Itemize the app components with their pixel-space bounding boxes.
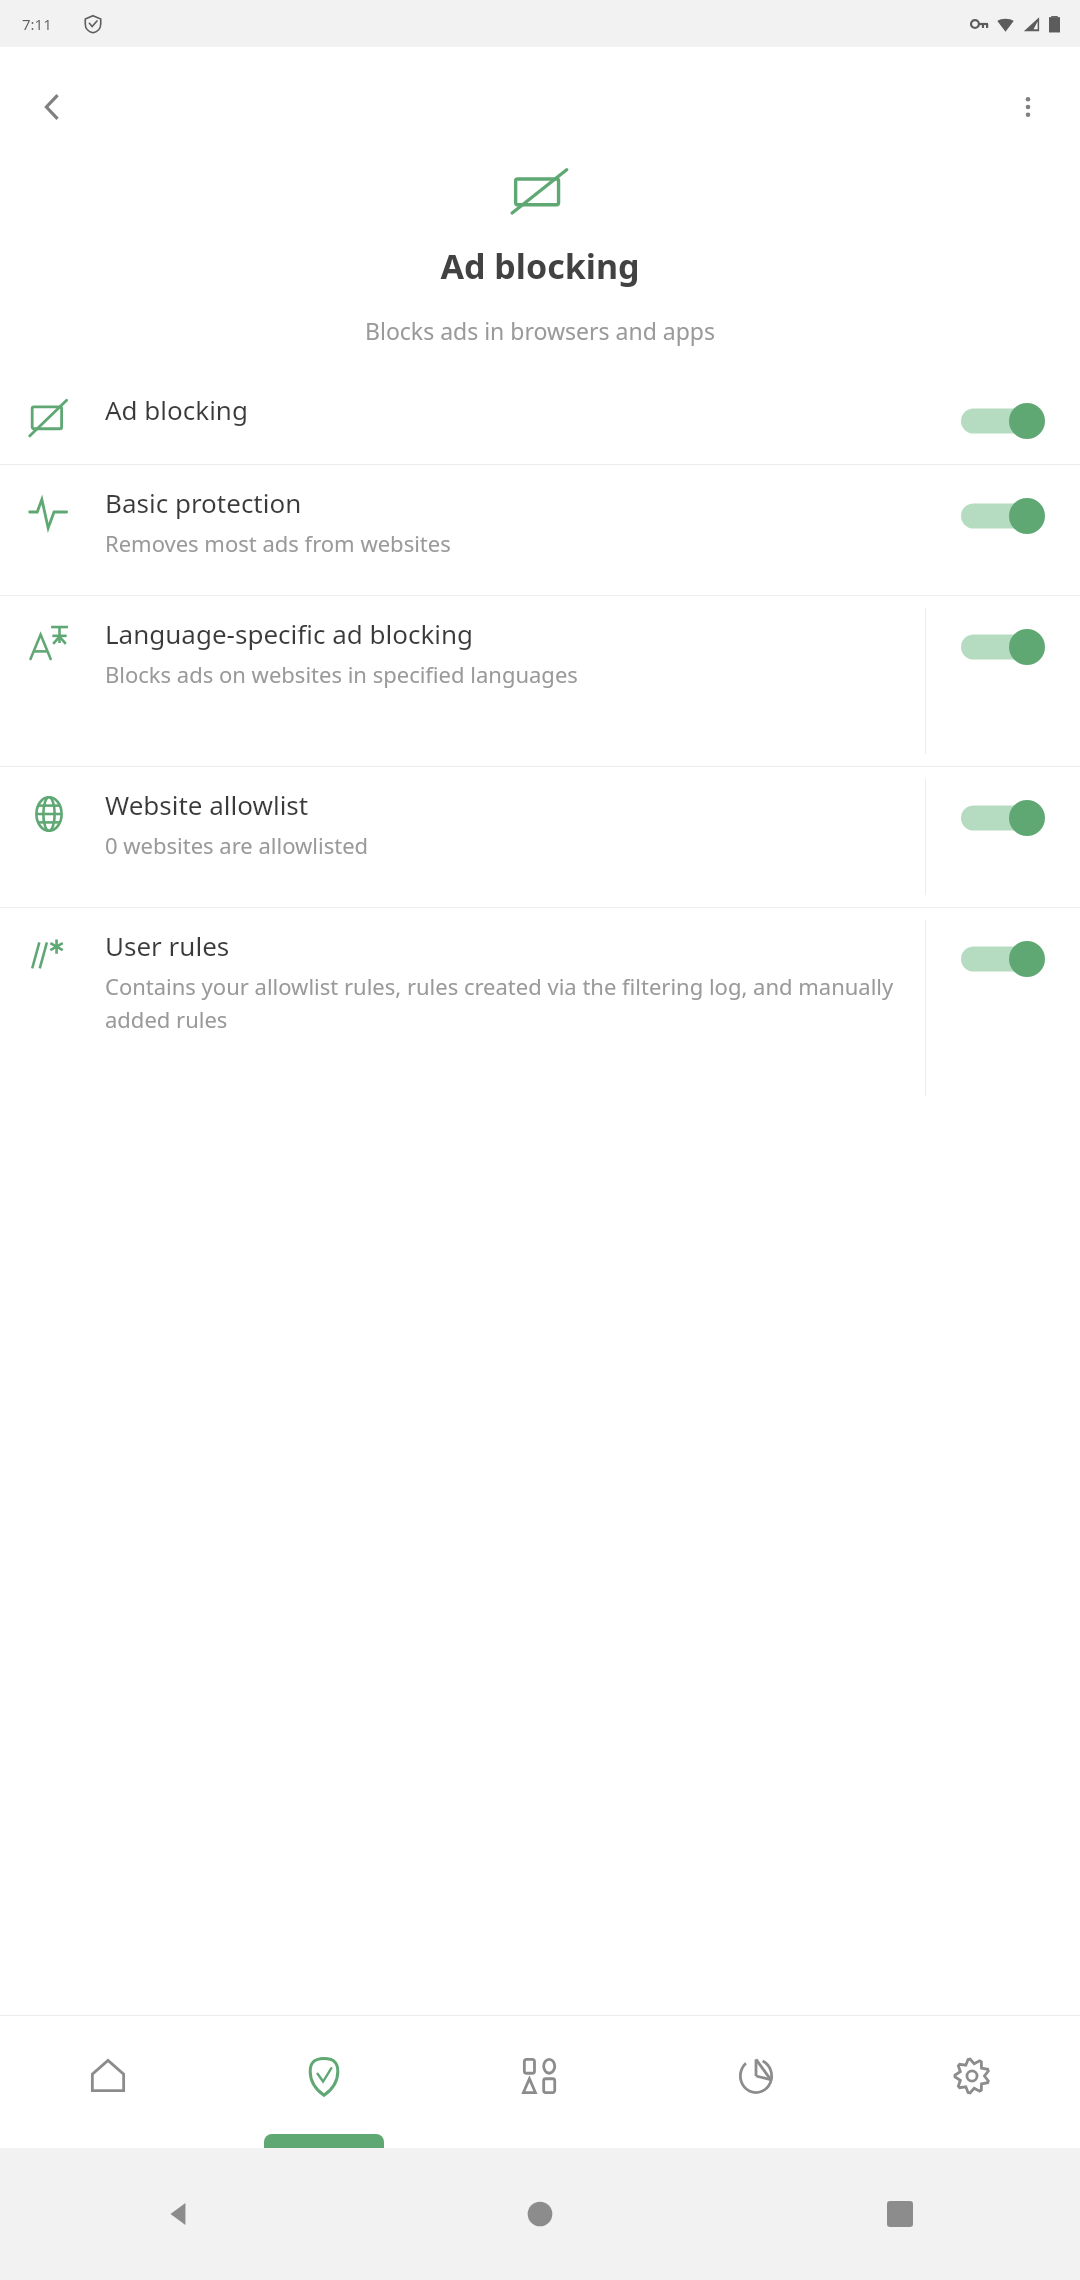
staticText: Basic protection — [105, 485, 302, 520]
staticText: 7:11 — [22, 14, 52, 34]
button[interactable]: Toggle Basic protection — [955, 493, 1051, 539]
button[interactable]: Toggle Website allowlist — [955, 795, 1051, 841]
button[interactable]: Home — [360, 2148, 720, 2280]
staticText: Blocks ads in browsers and apps — [365, 315, 715, 346]
button[interactable]: Statistics — [648, 2016, 864, 2148]
staticText: Blocks ads on websites in specified lang… — [105, 659, 578, 689]
staticText: Ad blocking — [105, 392, 248, 427]
button[interactable]: Back — [24, 79, 80, 135]
button[interactable]: Protection — [216, 2016, 432, 2148]
staticText: Website allowlist — [105, 787, 309, 822]
button[interactable]: Toggle Ad blocking — [955, 398, 1051, 444]
button[interactable]: Toggle Language-specific ad blocking — [955, 624, 1051, 670]
staticText: Contains your allowlist rules, rules cre… — [105, 971, 909, 1034]
button[interactable]: More options — [1000, 79, 1056, 135]
staticText: Ad blocking — [440, 243, 640, 289]
staticText: Removes most ads from websites — [105, 528, 451, 558]
button[interactable]: Website allowlist — [0, 767, 1080, 907]
button[interactable]: Back — [0, 2148, 360, 2280]
button[interactable]: Ad blocking — [0, 374, 1080, 464]
button[interactable]: Language-specific ad blocking — [0, 596, 1080, 766]
button[interactable]: Apps — [432, 2016, 648, 2148]
button[interactable]: Basic protection — [0, 465, 1080, 595]
button[interactable]: Home — [0, 2016, 216, 2148]
button[interactable]: Settings — [864, 2016, 1080, 2148]
staticText: Language-specific ad blocking — [105, 616, 474, 651]
button[interactable]: Recent apps — [720, 2148, 1080, 2280]
staticText: User rules — [105, 928, 230, 963]
button[interactable]: Toggle User rules — [955, 936, 1051, 982]
staticText: 0 websites are allowlisted — [105, 830, 369, 860]
button[interactable]: User rules — [0, 908, 1080, 1108]
